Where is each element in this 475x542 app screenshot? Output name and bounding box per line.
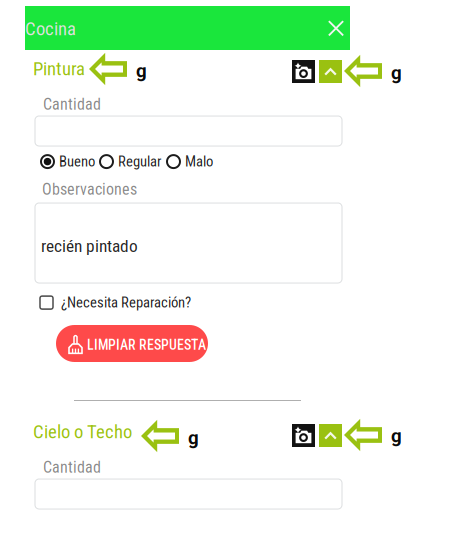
staticText: g	[136, 60, 147, 82]
staticText: g	[391, 62, 402, 84]
staticText: Regular	[118, 153, 161, 170]
staticText: Observaciones	[42, 180, 137, 199]
staticText: Bueno	[59, 153, 95, 170]
staticText: Cocina	[25, 18, 76, 40]
button[interactable]: Cocina	[25, 6, 350, 50]
staticText: Pintura	[33, 58, 85, 80]
button[interactable]: Regular	[99, 153, 161, 170]
button[interactable]: Bueno	[40, 153, 95, 170]
staticText: g	[391, 425, 402, 447]
button[interactable]: ¿Necesita Reparación?	[40, 294, 191, 311]
staticText: Cantidad	[43, 95, 101, 114]
button[interactable]: Contraer sección Pintura	[319, 60, 342, 83]
staticText: recién pintado	[41, 236, 138, 256]
staticText: Cantidad	[43, 458, 101, 477]
button[interactable]: Malo	[166, 153, 213, 170]
button[interactable]: Tomar foto	[292, 424, 315, 447]
button[interactable]: Tomar foto	[292, 60, 315, 83]
button[interactable]: Contraer sección Cielo o Techo	[319, 424, 342, 447]
button[interactable]: LIMPIAR RESPUESTA	[56, 325, 208, 362]
staticText: LIMPIAR RESPUESTA	[87, 337, 206, 353]
staticText: ¿Necesita Reparación?	[61, 294, 191, 311]
staticText: g	[188, 427, 199, 449]
staticText: Cielo o Techo	[33, 421, 132, 443]
staticText: Malo	[185, 153, 213, 170]
